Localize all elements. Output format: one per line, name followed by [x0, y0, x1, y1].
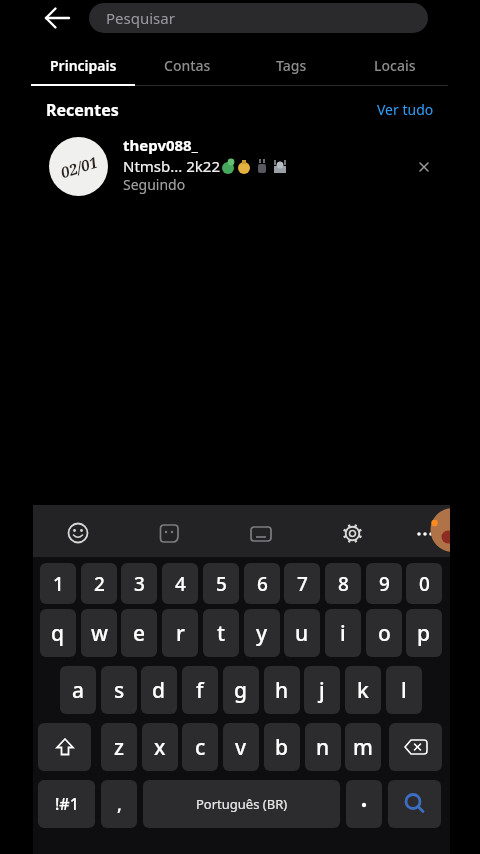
- staticText: Português (BR): [196, 795, 288, 813]
- staticText: Ver tudo: [377, 100, 434, 119]
- staticText: d: [152, 676, 166, 705]
- staticText: 8: [338, 571, 349, 597]
- staticText: c: [195, 733, 206, 762]
- staticText: i: [340, 619, 346, 648]
- staticText: thepv088_: [123, 135, 198, 155]
- staticText: 1: [53, 571, 64, 597]
- staticText: 2: [94, 571, 105, 597]
- staticText: b: [275, 733, 289, 762]
- staticText: m: [353, 733, 373, 762]
- staticText: p: [417, 619, 431, 648]
- staticText: q: [51, 619, 65, 648]
- staticText: h: [275, 676, 289, 705]
- staticText: t: [217, 619, 226, 648]
- staticText: j: [319, 676, 325, 705]
- staticText: n: [316, 733, 330, 762]
- staticText: l: [401, 676, 407, 705]
- staticText: !#1: [55, 793, 79, 815]
- staticText: u: [295, 619, 309, 648]
- staticText: v: [235, 733, 247, 762]
- staticText: 4: [175, 571, 186, 597]
- staticText: ,: [117, 792, 122, 817]
- staticText: z: [114, 733, 125, 762]
- staticText: Contas: [164, 56, 211, 75]
- staticText: e: [133, 619, 146, 648]
- staticText: w: [91, 619, 108, 648]
- staticText: 7: [297, 571, 308, 597]
- staticText: 9: [379, 571, 390, 597]
- staticText: Principais: [50, 56, 117, 75]
- staticText: 3: [134, 571, 145, 597]
- staticText: s: [114, 676, 125, 705]
- staticText: o: [378, 619, 391, 648]
- staticText: g: [234, 676, 248, 705]
- staticText: f: [196, 676, 204, 705]
- staticText: 6: [257, 571, 268, 597]
- staticText: r: [176, 619, 185, 648]
- staticText: x: [154, 733, 166, 762]
- staticText: 5: [216, 571, 227, 597]
- staticText: a: [72, 676, 85, 705]
- staticText: Recentes: [46, 99, 119, 121]
- staticText: y: [256, 619, 268, 648]
- staticText: Pesquisar: [106, 8, 175, 28]
- staticText: Seguindo: [123, 175, 186, 194]
- staticText: 02/01: [58, 152, 100, 182]
- staticText: k: [357, 676, 369, 705]
- staticText: Locais: [374, 56, 416, 75]
- staticText: 0: [419, 571, 430, 597]
- staticText: Tags: [276, 56, 307, 75]
- staticText: Ntmsb... 2k22: [123, 156, 220, 176]
